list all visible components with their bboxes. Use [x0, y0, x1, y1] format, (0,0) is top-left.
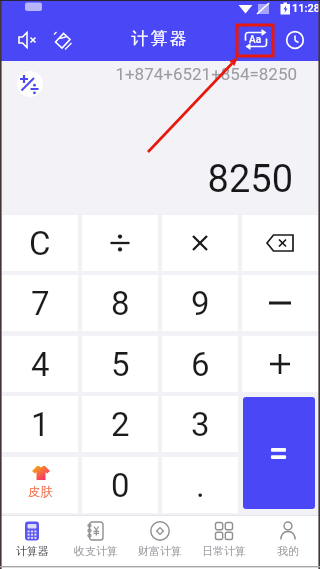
- staticText: 0: [111, 466, 130, 505]
- button[interactable]: [15, 28, 39, 52]
- staticText: 7: [31, 284, 50, 323]
- button[interactable]: [50, 28, 74, 52]
- staticText: 4: [31, 345, 50, 384]
- button[interactable]: 3: [162, 396, 238, 452]
- button[interactable]: [243, 397, 315, 509]
- button[interactable]: 皮肤: [2, 457, 78, 513]
- button[interactable]: [284, 29, 306, 51]
- staticText: 日常计算: [202, 544, 246, 558]
- staticText: .: [196, 466, 205, 505]
- staticText: 8: [111, 284, 130, 323]
- button[interactable]: .: [162, 457, 238, 513]
- button[interactable]: 7: [2, 275, 78, 331]
- staticText: 我的: [277, 544, 299, 558]
- staticText: 9: [191, 284, 210, 323]
- button[interactable]: 4: [2, 336, 78, 392]
- button[interactable]: 2: [82, 396, 158, 452]
- button[interactable]: 6: [162, 336, 238, 392]
- button[interactable]: 财富计算: [128, 516, 192, 566]
- staticText: 6: [191, 345, 210, 384]
- button[interactable]: [242, 336, 318, 392]
- staticText: 3: [191, 405, 210, 444]
- button[interactable]: 5: [82, 336, 158, 392]
- button[interactable]: [242, 215, 318, 271]
- staticText: 收支计算: [74, 544, 118, 558]
- button[interactable]: [17, 71, 43, 97]
- button[interactable]: [82, 215, 158, 271]
- button[interactable]: Aa: [243, 28, 269, 53]
- button[interactable]: [242, 275, 318, 331]
- button[interactable]: C: [2, 215, 78, 271]
- button[interactable]: 8: [82, 275, 158, 331]
- staticText: 计算器: [16, 544, 49, 558]
- button[interactable]: 我的: [256, 516, 320, 566]
- staticText: 皮肤: [28, 484, 53, 500]
- staticText: 11:28: [292, 2, 320, 15]
- staticText: 1+874+6521+854=8250: [0, 64, 297, 84]
- button[interactable]: 计算器: [0, 516, 64, 566]
- button[interactable]: 收支计算: [64, 516, 128, 566]
- button[interactable]: 9: [162, 275, 238, 331]
- staticText: 5: [111, 345, 130, 384]
- button[interactable]: 1: [2, 396, 78, 452]
- staticText: Aa: [249, 34, 262, 46]
- staticText: 财富计算: [138, 544, 182, 558]
- staticText: 1: [31, 405, 50, 444]
- button[interactable]: 日常计算: [192, 516, 256, 566]
- staticText: C: [29, 224, 51, 263]
- button[interactable]: [162, 215, 238, 271]
- staticText: 2: [111, 405, 130, 444]
- staticText: 计算器: [0, 28, 320, 49]
- button[interactable]: 0: [82, 457, 158, 513]
- staticText: 8250: [0, 157, 293, 202]
